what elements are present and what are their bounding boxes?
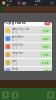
staticText: S bbox=[14, 92, 16, 98]
staticText: 120 bbox=[43, 29, 49, 32]
staticText: Fertilizer bbox=[12, 43, 24, 47]
button[interactable]: Harvester bbox=[4, 51, 52, 58]
button[interactable]: Barn bbox=[4, 59, 52, 66]
staticText: LVL 7 bbox=[35, 0, 41, 8]
staticText: Lvl 3 bbox=[12, 31, 18, 34]
staticText: Lvl 2 bbox=[12, 47, 18, 50]
button[interactable]: Settings bbox=[50, 1, 54, 5]
staticText: Barn bbox=[12, 59, 18, 63]
staticText: 1.2K bbox=[42, 53, 49, 56]
staticText: Harvester bbox=[12, 51, 24, 55]
staticText: 340 bbox=[43, 37, 49, 40]
staticText: 560 bbox=[43, 45, 49, 48]
button[interactable]: Watering Can bbox=[4, 27, 52, 34]
staticText: Truck bbox=[12, 67, 18, 71]
staticText: Watering Can bbox=[12, 27, 30, 31]
button[interactable]: Truck bbox=[4, 67, 52, 74]
button[interactable]: T bbox=[2, 91, 9, 98]
staticText: 2.4K bbox=[42, 61, 49, 64]
button[interactable]: Fertilizer bbox=[4, 43, 52, 50]
staticText: U bbox=[49, 92, 52, 98]
staticText: Lvl 1 bbox=[12, 39, 18, 42]
staticText: 48 bbox=[22, 0, 26, 6]
button[interactable]: U bbox=[47, 91, 54, 98]
button[interactable]: S bbox=[11, 91, 18, 98]
staticText: Lvl 4 bbox=[12, 63, 18, 66]
staticText: Upgrades bbox=[6, 20, 26, 25]
button[interactable]: Close bbox=[45, 20, 50, 25]
staticText: X bbox=[46, 20, 48, 25]
staticText: 1.2K bbox=[6, 0, 11, 8]
staticText: T bbox=[4, 92, 6, 98]
button[interactable]: Sprinkler bbox=[4, 35, 52, 42]
staticText: Sprinkler bbox=[12, 35, 24, 39]
staticText: Lvl 1 bbox=[12, 55, 18, 58]
staticText: 5K bbox=[45, 69, 49, 72]
